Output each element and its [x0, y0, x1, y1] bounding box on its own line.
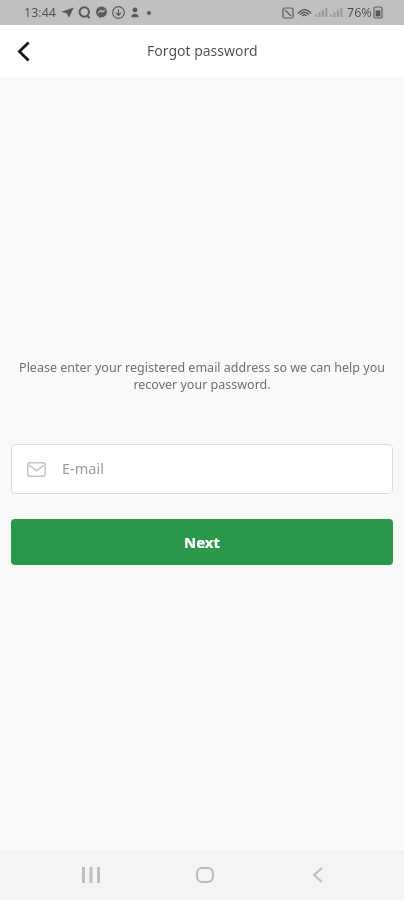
staticText: E-mail: [62, 458, 104, 478]
button[interactable]: Home: [181, 851, 229, 899]
staticText: 13:44: [24, 4, 56, 21]
staticText: Forgot password: [147, 41, 258, 60]
button[interactable]: E-mail: [11, 444, 393, 494]
button[interactable]: Back: [294, 851, 342, 899]
button[interactable]: Back: [4, 31, 44, 71]
button[interactable]: Next: [11, 519, 393, 565]
staticText: Next: [184, 532, 221, 552]
button[interactable]: Recent apps: [67, 851, 115, 899]
staticText: Please enter your registered email addre…: [14, 359, 390, 393]
staticText: 76%: [347, 4, 372, 21]
